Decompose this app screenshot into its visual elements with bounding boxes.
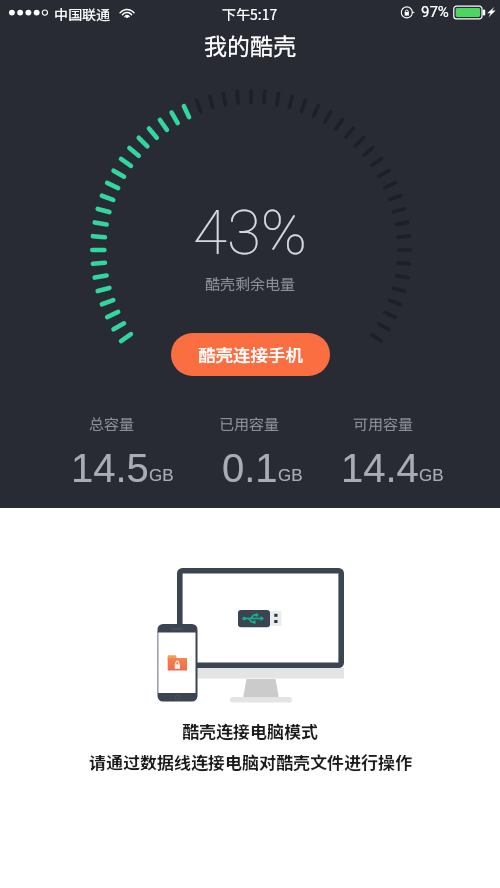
staticText: 可用容量	[353, 413, 414, 435]
staticText: GB	[419, 466, 444, 485]
other: Phone connected to computer via USB	[0, 508, 500, 888]
staticText: 14.4	[341, 446, 419, 491]
staticText: 97%	[421, 3, 449, 21]
button[interactable]: 酷壳连接手机	[171, 333, 330, 376]
staticText: 0.1	[222, 446, 278, 491]
staticText: 请通过数据线连接电脑对酷壳文件进行操作	[89, 749, 412, 774]
staticText: 总容量	[89, 413, 135, 435]
staticText: GB	[278, 466, 303, 485]
staticText: 酷壳连接电脑模式	[182, 718, 318, 743]
staticText: 中国联通	[54, 4, 110, 24]
staticText: 我的酷壳	[204, 28, 296, 61]
staticText: 14.5	[71, 446, 149, 491]
staticText: 下午5:17	[222, 4, 278, 24]
staticText: 43%	[193, 196, 308, 269]
staticText: 酷壳连接手机	[198, 342, 303, 367]
staticText: 酷壳剩余电量	[205, 273, 296, 295]
staticText: 已用容量	[219, 413, 280, 435]
other: Status bar	[0, 0, 500, 26]
staticText: GB	[149, 466, 174, 485]
button[interactable]: Phone connected to computer via USB	[0, 508, 500, 888]
